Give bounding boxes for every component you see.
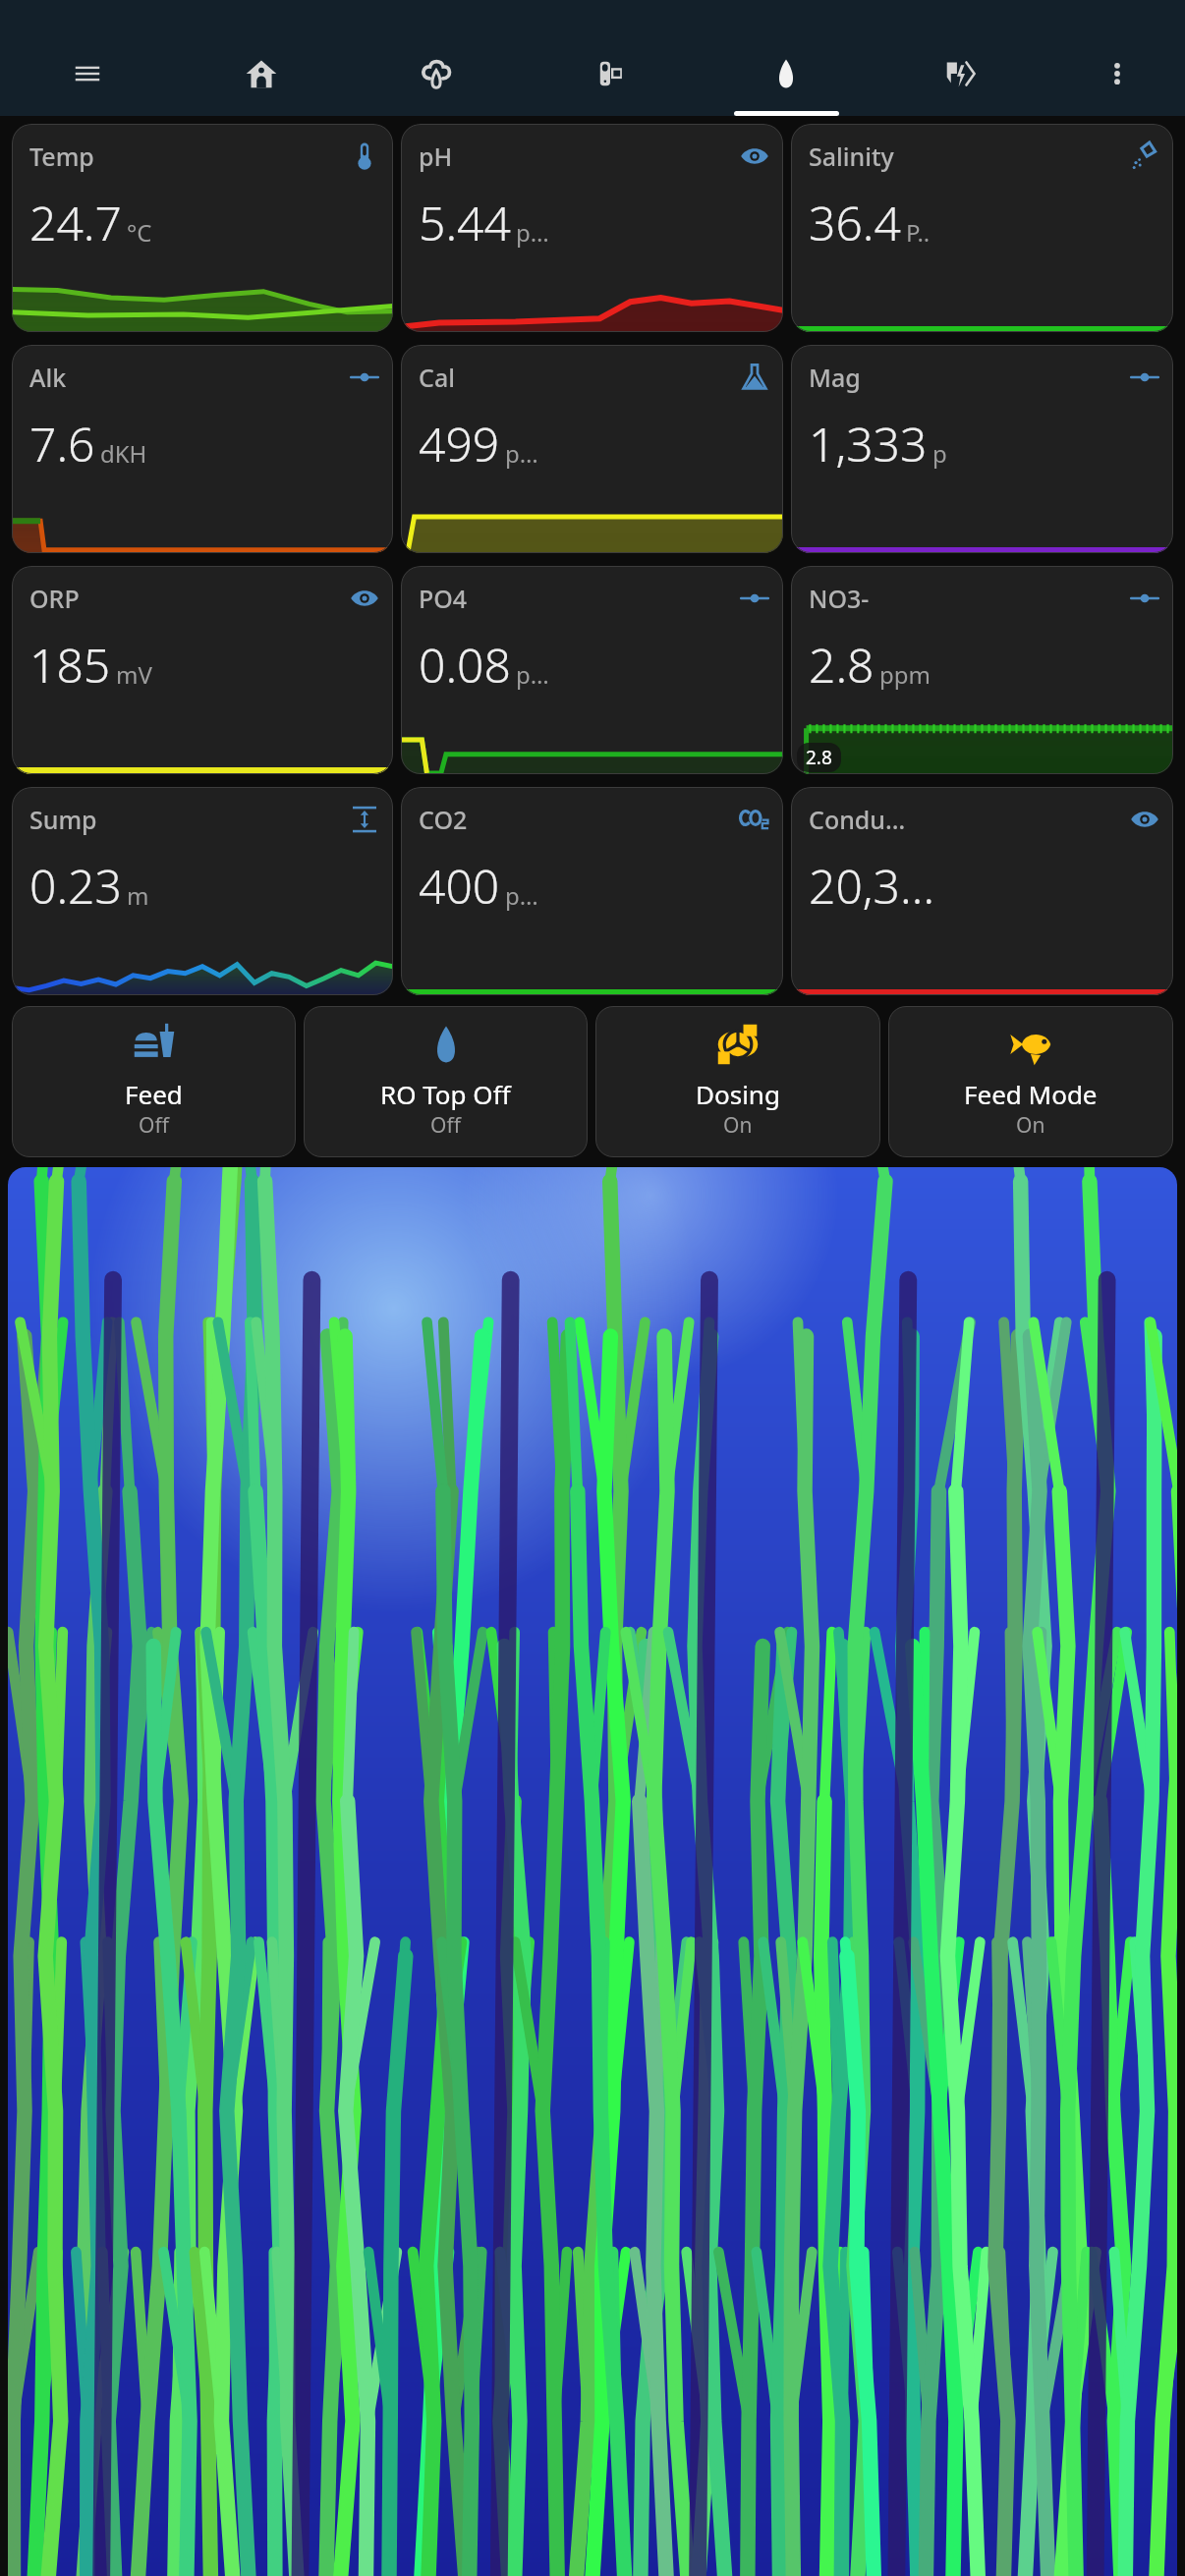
staticText: 2.8	[809, 633, 875, 697]
staticText: On	[723, 1111, 753, 1140]
staticText: 0.08	[419, 633, 511, 697]
staticText: p…	[505, 437, 538, 470]
staticText: 5.44	[419, 191, 511, 254]
button[interactable]: Feed	[12, 1006, 296, 1157]
staticText: pH	[419, 140, 453, 173]
button[interactable]: Feed Mode	[888, 1006, 1173, 1157]
button[interactable]: More options	[1048, 37, 1185, 110]
staticText: Off	[139, 1111, 169, 1140]
button[interactable]: PO4	[401, 566, 783, 774]
staticText: 185	[29, 633, 111, 697]
staticText: Off	[430, 1111, 461, 1140]
staticText: 1,333	[809, 412, 928, 476]
staticText: 20,3…	[809, 854, 935, 918]
button[interactable]: Home	[174, 37, 349, 110]
button[interactable]: NO3-	[791, 566, 1173, 774]
staticText: 0.23	[29, 854, 122, 918]
staticText: p…	[516, 216, 549, 249]
staticText: Dosing	[696, 1077, 780, 1111]
staticText: 24.7	[29, 191, 122, 254]
button[interactable]: Menu	[0, 37, 174, 110]
button[interactable]: Mag	[791, 345, 1173, 553]
button[interactable]: ORP	[12, 566, 393, 774]
staticText: Condu…	[809, 803, 906, 836]
staticText: 499	[419, 412, 500, 476]
staticText: °C	[127, 216, 152, 249]
button[interactable]: Devices	[524, 37, 699, 110]
staticText: RO Top Off	[380, 1077, 511, 1111]
button[interactable]: Salinity	[791, 124, 1173, 332]
staticText: Cal	[419, 361, 455, 394]
button[interactable]: CO2	[401, 787, 783, 995]
staticText: 2.8	[806, 745, 832, 770]
button[interactable]: Weather	[349, 37, 524, 110]
staticText: p	[932, 437, 947, 470]
staticText: PO4	[419, 582, 468, 615]
button[interactable]: Cal	[401, 345, 783, 553]
staticText: Salinity	[809, 140, 894, 173]
button[interactable]: Aquarium live camera	[8, 1167, 1177, 2576]
staticText: ORP	[29, 582, 80, 615]
staticText: Alk	[29, 361, 67, 394]
staticText: P..	[906, 216, 931, 249]
button[interactable]: Dosing	[595, 1006, 880, 1157]
staticText: Temp	[29, 140, 94, 173]
button[interactable]: Sump	[12, 787, 393, 995]
button[interactable]: Automation	[874, 37, 1048, 110]
staticText: CO2	[419, 803, 468, 836]
staticText: Mag	[809, 361, 861, 394]
button[interactable]: pH	[401, 124, 783, 332]
staticText: m	[127, 879, 149, 912]
staticText: NO3-	[809, 582, 870, 615]
staticText: dKH	[100, 437, 147, 470]
staticText: mV	[116, 658, 152, 691]
staticText: p…	[505, 879, 538, 912]
staticText: ppm	[879, 658, 931, 691]
button[interactable]: Condu…	[791, 787, 1173, 995]
staticText: p…	[516, 658, 549, 691]
staticText: On	[1016, 1111, 1045, 1140]
button[interactable]: Temp	[12, 124, 393, 332]
button[interactable]: RO Top Off	[304, 1006, 588, 1157]
button[interactable]: Alk	[12, 345, 393, 553]
staticText: Feed Mode	[964, 1077, 1098, 1111]
staticText: Feed	[125, 1077, 183, 1111]
button[interactable]: Water parameters	[699, 37, 874, 110]
staticText: 400	[419, 854, 500, 918]
staticText: 7.6	[29, 412, 95, 476]
staticText: 36.4	[809, 191, 901, 254]
staticText: Sump	[29, 803, 97, 836]
